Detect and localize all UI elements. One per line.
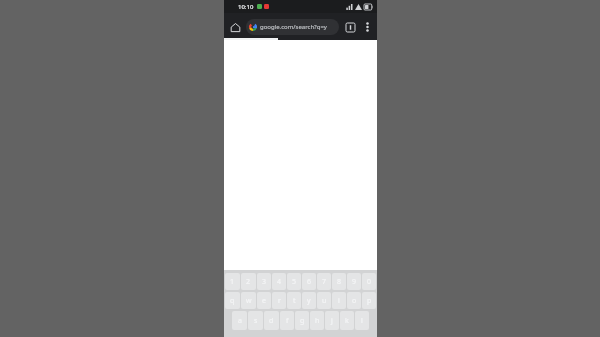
staticText: e	[262, 296, 266, 306]
staticText: k	[345, 316, 349, 326]
staticText: h	[315, 316, 320, 326]
button[interactable]: google.com/search?q=y	[246, 19, 339, 35]
staticText: 9	[352, 277, 357, 287]
staticText: u	[322, 296, 327, 306]
staticText: 3	[262, 277, 267, 287]
staticText: l	[361, 316, 363, 326]
button[interactable]: e	[257, 292, 271, 309]
button[interactable]: More options	[360, 20, 374, 34]
button[interactable]: w	[241, 292, 256, 309]
button[interactable]: Switch tabs	[342, 19, 358, 35]
button[interactable]: d	[264, 311, 279, 330]
staticText: 7	[322, 277, 327, 287]
button[interactable]: 3	[257, 273, 271, 290]
staticText: j	[331, 316, 333, 326]
staticText: y	[307, 296, 311, 306]
button[interactable]: 9	[347, 273, 361, 290]
staticText: g	[300, 316, 305, 326]
staticText: o	[352, 296, 357, 306]
staticText: 1	[230, 277, 235, 287]
staticText: 8	[337, 277, 342, 287]
button[interactable]: p	[362, 292, 376, 309]
staticText: t	[293, 296, 296, 306]
button[interactable]: q	[225, 292, 240, 309]
staticText: p	[367, 296, 372, 306]
button[interactable]: o	[347, 292, 361, 309]
staticText: 6	[307, 277, 312, 287]
staticText: 2	[246, 277, 251, 287]
staticText: f	[286, 316, 289, 326]
button[interactable]: 6	[302, 273, 316, 290]
button[interactable]: 5	[287, 273, 301, 290]
staticText: d	[269, 316, 274, 326]
button[interactable]: u	[317, 292, 331, 309]
staticText: 5	[292, 277, 297, 287]
button[interactable]: h	[310, 311, 324, 330]
staticText: 4	[277, 277, 282, 287]
button[interactable]: 8	[332, 273, 346, 290]
staticText: s	[254, 316, 258, 326]
staticText: r	[278, 296, 281, 306]
button[interactable]: y	[302, 292, 316, 309]
staticText: 0	[367, 277, 372, 287]
button[interactable]: Home	[227, 19, 243, 35]
staticText: w	[246, 296, 252, 306]
button[interactable]: 0	[362, 273, 376, 290]
staticText: i	[338, 296, 340, 306]
staticText: 10:10	[238, 3, 254, 11]
button[interactable]: g	[295, 311, 309, 330]
staticText: q	[230, 296, 235, 306]
staticText: a	[238, 316, 242, 326]
staticText: google.com/search?q=y	[260, 23, 327, 31]
button[interactable]: 4	[272, 273, 286, 290]
